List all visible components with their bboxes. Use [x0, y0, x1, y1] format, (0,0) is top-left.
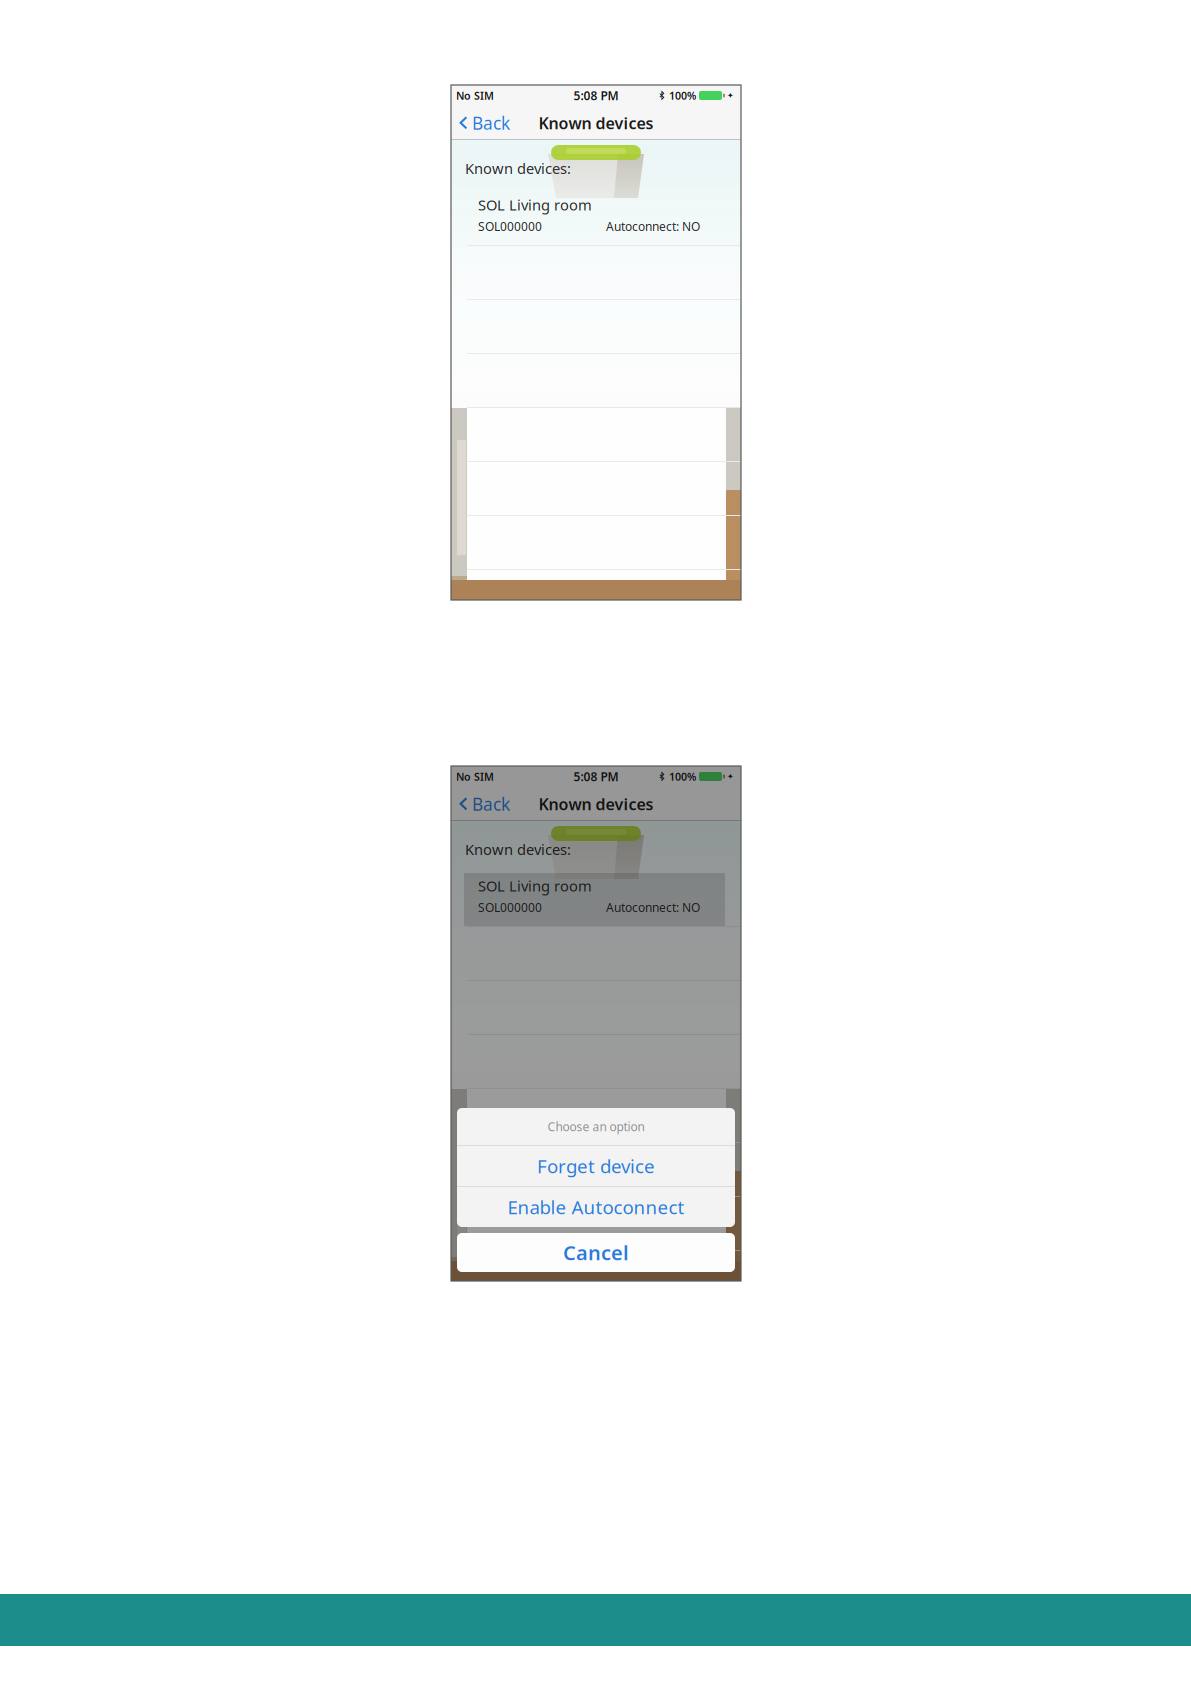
staticText: Forget device: [537, 1154, 655, 1178]
staticText: SOL000000: [478, 899, 542, 915]
button[interactable]: Cancel: [457, 1233, 735, 1272]
staticText: Back: [472, 111, 510, 134]
staticText: No SIM: [456, 88, 494, 103]
staticText: ✦: [727, 91, 734, 100]
staticText: 5:08 PM: [573, 87, 618, 103]
staticText: 100%: [669, 88, 696, 103]
button[interactable]: Back: [451, 784, 518, 823]
button[interactable]: Forget device: [457, 1146, 735, 1186]
staticText: SOL Living room: [478, 195, 592, 214]
staticText: Known devices: [538, 112, 653, 134]
staticText: Known devices:: [465, 839, 571, 859]
staticText: SOL000000: [478, 218, 542, 234]
button[interactable]: Back: [451, 103, 518, 142]
staticText: Cancel: [563, 1239, 629, 1266]
staticText: ✦: [727, 772, 734, 781]
button[interactable]: Enable Autoconnect: [457, 1187, 735, 1227]
staticText: SOL Living room: [478, 876, 592, 895]
staticText: Choose an option: [547, 1118, 644, 1134]
staticText: Known devices: [538, 793, 653, 815]
button[interactable]: SOL Living room: [451, 192, 741, 245]
staticText: No SIM: [456, 769, 494, 784]
staticText: Back: [472, 792, 510, 815]
staticText: 5:08 PM: [573, 768, 618, 784]
staticText: Autoconnect: NO: [606, 218, 700, 234]
staticText: Enable Autoconnect: [507, 1195, 684, 1219]
button[interactable]: SOL Living room: [451, 873, 741, 926]
staticText: Known devices:: [465, 158, 571, 178]
staticText: 100%: [669, 769, 696, 784]
staticText: Autoconnect: NO: [606, 899, 700, 915]
